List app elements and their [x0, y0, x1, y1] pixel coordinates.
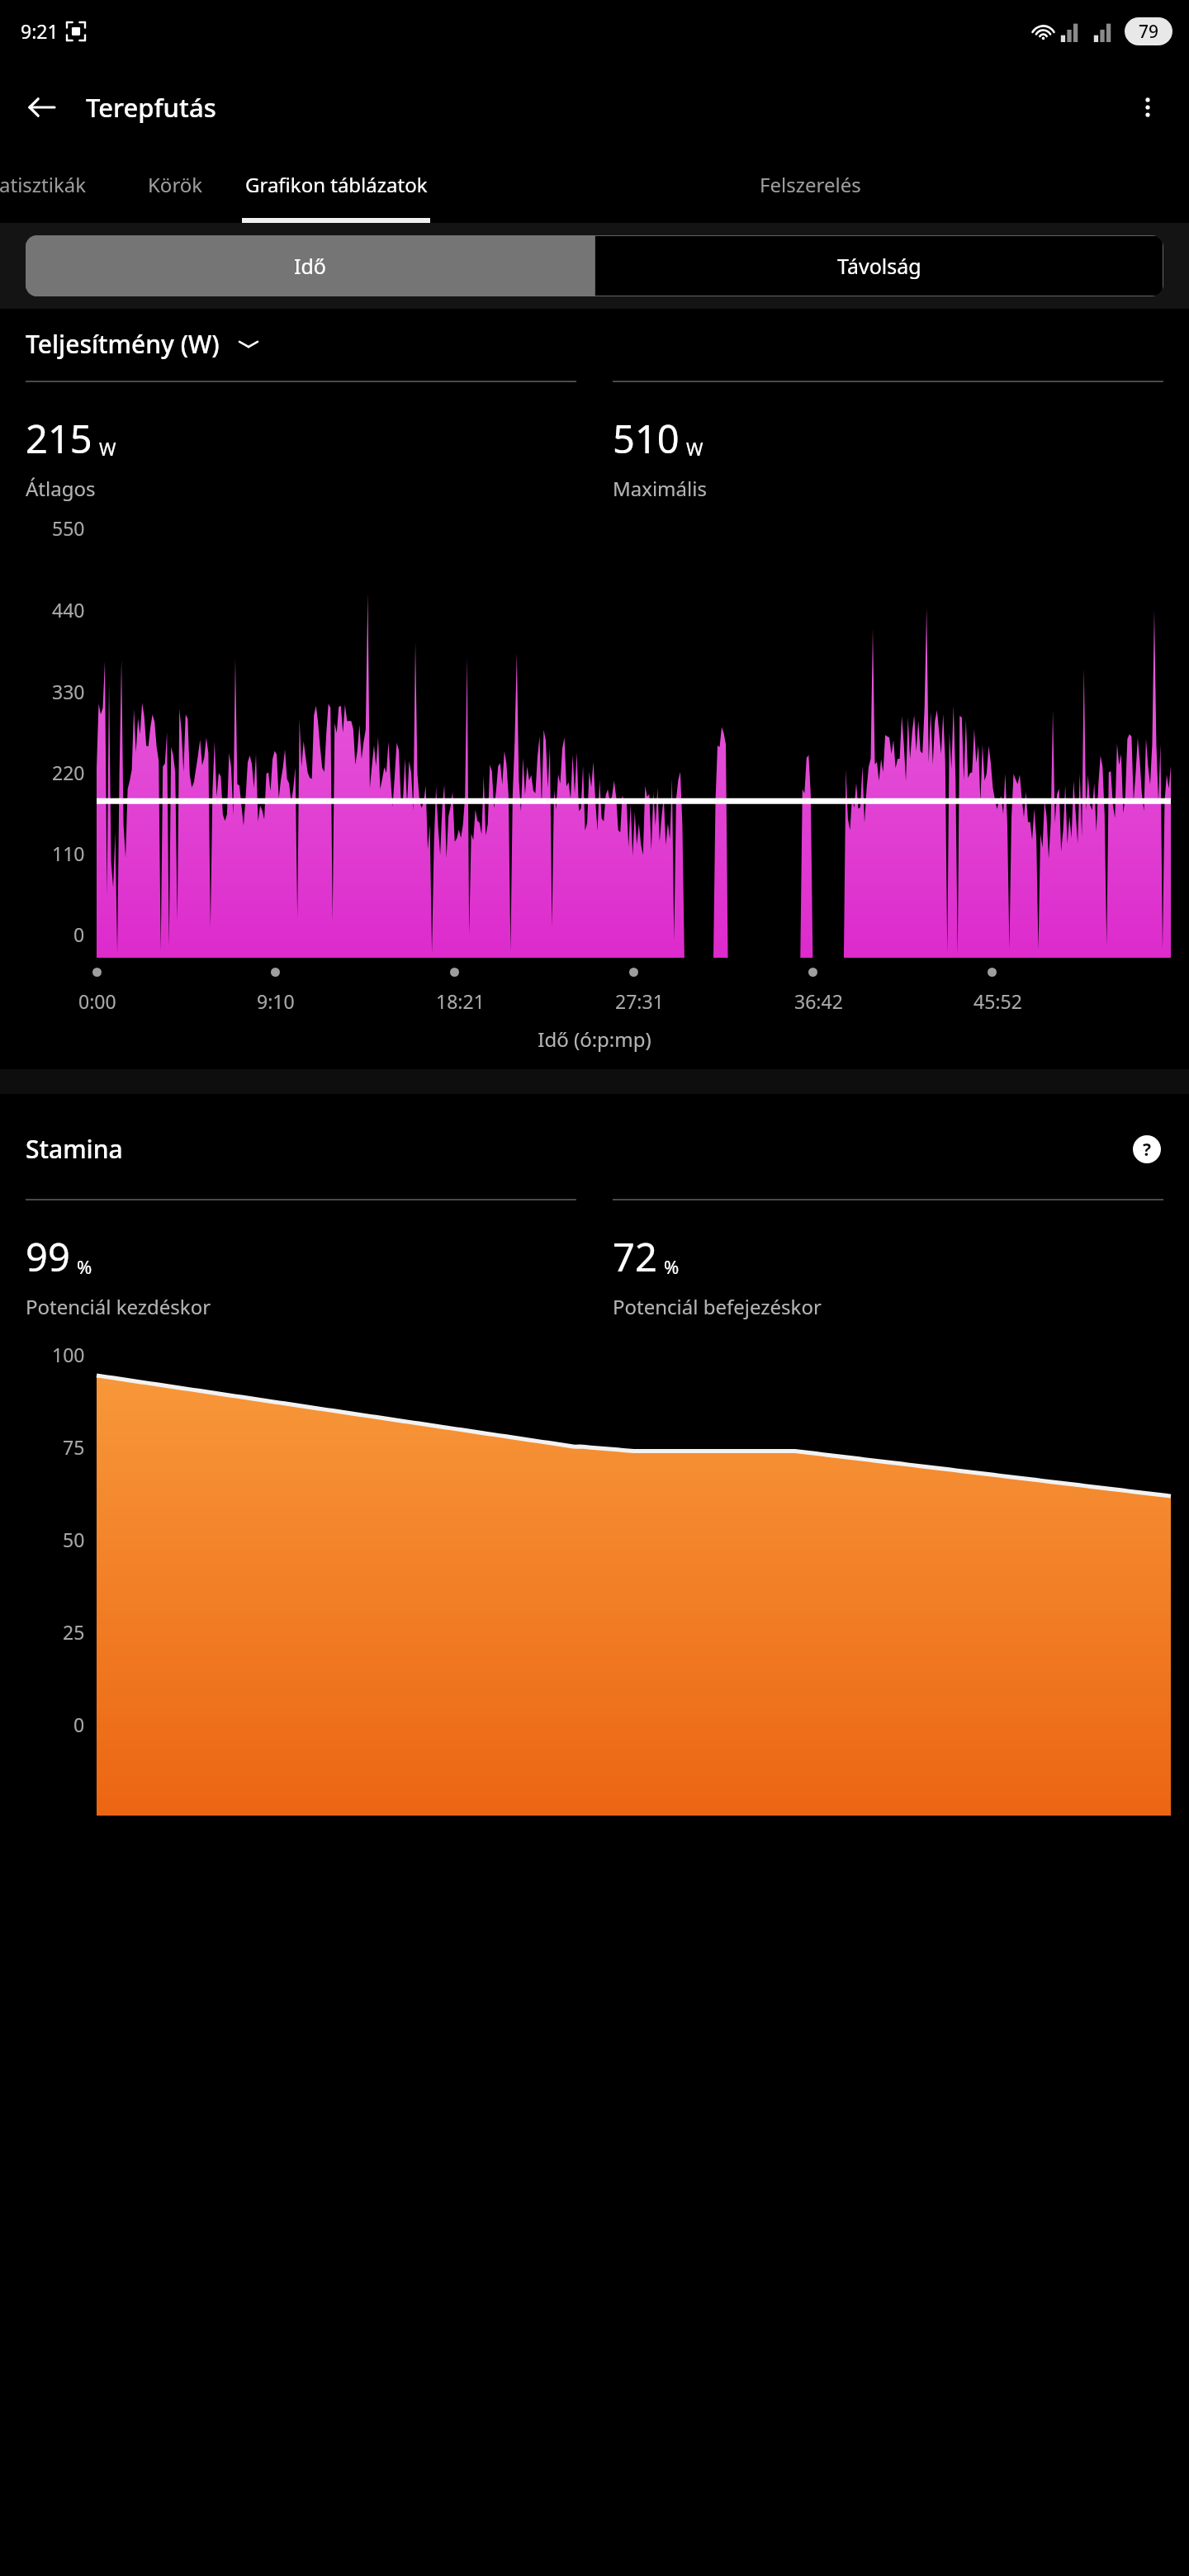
staticText: 330 — [52, 679, 85, 704]
staticText: 27:31 — [615, 988, 664, 1014]
staticText: 25 — [63, 1619, 85, 1645]
staticText: atisztikák — [0, 171, 87, 198]
staticText: 45:52 — [973, 988, 1022, 1014]
button[interactable]: Teljesítmény (W) — [26, 327, 259, 361]
staticText: Potenciál befejezéskor — [613, 1293, 822, 1320]
staticText: Körök — [148, 171, 203, 198]
staticText: Grafikon táblázatok — [245, 171, 428, 198]
staticText: 0:00 — [78, 988, 116, 1014]
button[interactable]: Idő — [26, 235, 594, 296]
staticText: % — [77, 1254, 92, 1279]
staticText: 510 — [613, 412, 680, 465]
staticText: 99 — [26, 1230, 70, 1283]
staticText: Felszerelés — [760, 171, 861, 198]
staticText: 440 — [52, 597, 85, 623]
staticText: 9:10 — [257, 988, 295, 1014]
staticText: 0 — [73, 1712, 85, 1737]
staticText: ? — [1143, 1138, 1152, 1162]
button[interactable]: Grafikon táblázatok — [241, 153, 431, 223]
staticText: 36:42 — [794, 988, 843, 1014]
staticText: 9:21 — [21, 18, 59, 44]
staticText: 50 — [63, 1527, 85, 1552]
staticText: 0 — [73, 921, 85, 947]
staticText: 72 — [613, 1230, 657, 1283]
staticText: 75 — [63, 1434, 85, 1460]
staticText: Idő (ó:p:mp) — [0, 1025, 1189, 1053]
staticText: 550 — [52, 515, 85, 541]
button[interactable]: Felszerelés — [431, 153, 1189, 223]
staticText: Terepfutás — [86, 90, 216, 125]
staticText: Átlagos — [26, 475, 96, 502]
button[interactable]: Back — [18, 84, 64, 130]
staticText: Potenciál kezdéskor — [26, 1293, 211, 1320]
staticText: 18:21 — [436, 988, 485, 1014]
staticText: Idő — [294, 252, 326, 280]
staticText: 79 — [1139, 20, 1159, 44]
staticText: Maximális — [613, 475, 707, 502]
staticText: Távolság — [837, 252, 921, 280]
staticText: W — [99, 436, 116, 461]
staticText: 100 — [52, 1342, 85, 1367]
staticText: Teljesítmény (W) — [26, 327, 220, 361]
staticText: % — [664, 1254, 680, 1279]
button[interactable]: More options — [1125, 84, 1171, 130]
staticText: 220 — [52, 760, 85, 785]
staticText: 215 — [26, 412, 92, 465]
button[interactable]: Távolság — [595, 236, 1163, 296]
button[interactable]: Help — [1130, 1133, 1163, 1166]
staticText: 110 — [52, 841, 85, 866]
staticText: Stamina — [26, 1132, 123, 1166]
button[interactable]: Körök — [109, 153, 241, 223]
button[interactable]: atisztikák — [0, 153, 109, 223]
staticText: W — [686, 436, 703, 461]
